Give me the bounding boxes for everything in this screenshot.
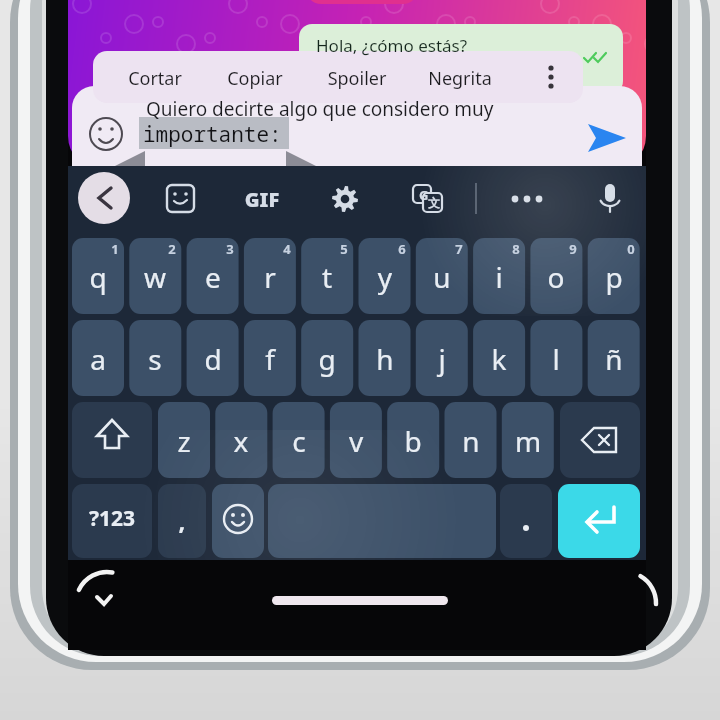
staticText: e [83, 258, 343, 303]
button[interactable]: e [187, 238, 239, 314]
staticText: c [169, 422, 429, 467]
button[interactable]: Translate [403, 172, 451, 224]
button[interactable]: t [301, 238, 353, 314]
button[interactable]: r [244, 238, 296, 314]
staticText: s [25, 340, 285, 385]
button[interactable]: Backspace [560, 402, 640, 478]
button[interactable]: p [588, 238, 640, 314]
button[interactable]: Comma [158, 484, 206, 558]
staticText: 12 de enero [232, 0, 492, 7]
staticText: v [226, 422, 486, 467]
staticText: z [54, 422, 314, 467]
staticText: G [419, 186, 720, 207]
button[interactable]: Back [78, 172, 130, 224]
button[interactable]: Stickers [156, 172, 204, 224]
button[interactable]: Emoji keyboard [212, 484, 264, 558]
button[interactable]: v [330, 402, 382, 478]
staticText: 4 [157, 240, 417, 261]
button[interactable]: x [215, 402, 267, 478]
button[interactable]: Send [583, 112, 639, 166]
button[interactable]: f [244, 320, 296, 396]
staticText: u [312, 258, 572, 303]
button[interactable]: d [187, 320, 239, 396]
staticText: importante: [143, 120, 603, 154]
staticText: q [0, 258, 228, 303]
staticText: g [197, 340, 457, 385]
button[interactable]: l [530, 320, 582, 396]
staticText: m [398, 422, 658, 467]
staticText: p [484, 258, 720, 303]
staticText: r [140, 258, 400, 303]
staticText: ñ [484, 340, 720, 385]
staticText: j [312, 340, 572, 385]
staticText: Cortar [25, 66, 285, 95]
staticText: h [255, 340, 515, 385]
staticText: t [197, 258, 457, 303]
staticText: GIF [132, 186, 392, 218]
button[interactable]: Emoji [80, 112, 132, 164]
button[interactable]: Voice input [586, 172, 634, 224]
staticText: 3 [100, 240, 360, 261]
staticText: Quiero decirte algo que considero muy [146, 96, 606, 126]
button[interactable]: o [530, 238, 582, 314]
button[interactable]: n [445, 402, 497, 478]
staticText: 7 [329, 240, 589, 261]
button[interactable]: Enter [558, 484, 640, 558]
button[interactable]: Negrita [425, 51, 535, 103]
staticText: 0 [501, 240, 720, 261]
staticText: Copiar [125, 66, 385, 95]
button[interactable]: Shift [72, 402, 152, 478]
staticText: , [52, 504, 312, 542]
button[interactable]: g [301, 320, 353, 396]
staticText: n [341, 422, 601, 467]
staticText: ?123 [0, 504, 242, 538]
button[interactable]: c [273, 402, 325, 478]
staticText: 8 [386, 240, 646, 261]
staticText: 1 [0, 240, 245, 261]
button[interactable]: Space [268, 484, 496, 558]
staticText: 文 [428, 195, 720, 214]
button[interactable]: q [72, 238, 124, 314]
button[interactable]: More options [535, 51, 581, 103]
button[interactable]: i [473, 238, 525, 314]
staticText: d [83, 340, 343, 385]
button[interactable]: w [129, 238, 181, 314]
staticText: Negrita [330, 66, 590, 95]
button[interactable]: Period [500, 484, 552, 558]
button[interactable]: Symbols ?123 [72, 484, 152, 558]
staticText: b [283, 422, 543, 467]
button[interactable]: Cortar [93, 51, 203, 103]
button[interactable]: j [416, 320, 468, 396]
button[interactable]: Keyboard settings [321, 172, 369, 224]
staticText: 6 [272, 240, 532, 261]
button[interactable]: a [72, 320, 124, 396]
staticText: Spoiler [227, 66, 487, 95]
button[interactable]: k [473, 320, 525, 396]
button[interactable]: y [359, 238, 411, 314]
button[interactable]: h [359, 320, 411, 396]
staticText: a [0, 340, 228, 385]
button[interactable]: GIF [238, 172, 286, 224]
staticText: x [111, 422, 371, 467]
button[interactable]: s [129, 320, 181, 396]
button[interactable]: u [416, 238, 468, 314]
button[interactable]: b [387, 402, 439, 478]
button[interactable]: Copiar [205, 51, 315, 103]
staticText: o [426, 258, 686, 303]
button[interactable]: More input options [503, 172, 551, 224]
staticText: y [255, 258, 515, 303]
staticText: f [140, 340, 400, 385]
staticText: 2 [42, 240, 302, 261]
staticText: Hola, ¿cómo estás? [316, 34, 720, 61]
staticText: 9 [443, 240, 703, 261]
staticText: w [25, 258, 285, 303]
staticText: i [369, 258, 629, 303]
button[interactable]: z [158, 402, 210, 478]
button[interactable]: Spoiler [315, 51, 425, 103]
button[interactable]: ñ [588, 320, 640, 396]
staticText: 5 [214, 240, 474, 261]
staticText: l [426, 340, 686, 385]
button[interactable]: m [502, 402, 554, 478]
staticText: k [369, 340, 629, 385]
